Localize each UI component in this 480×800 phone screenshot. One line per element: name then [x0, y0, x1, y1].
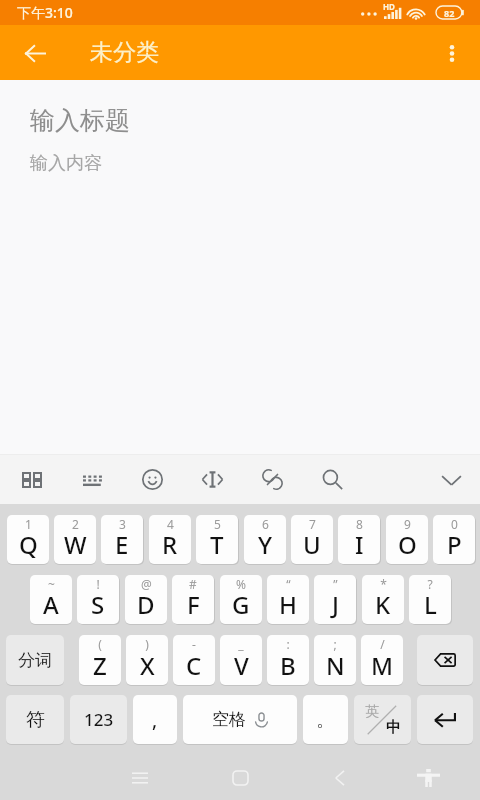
button[interactable]: - — [173, 635, 215, 685]
staticText: ! — [96, 576, 100, 592]
staticText: B — [280, 649, 296, 682]
button[interactable]: / — [361, 635, 403, 685]
staticText: HD — [383, 1, 395, 12]
button[interactable]: 123 — [70, 695, 127, 744]
button[interactable]: 。 — [303, 695, 348, 744]
staticText: Z — [93, 649, 107, 682]
button[interactable]: : — [267, 635, 309, 685]
button[interactable]: 2 — [54, 515, 96, 564]
staticText: ” — [333, 576, 338, 592]
staticText: ) — [145, 636, 149, 652]
staticText: * — [380, 576, 387, 592]
staticText: U — [303, 528, 321, 561]
staticText: 4 — [167, 516, 174, 532]
staticText: ~ — [48, 576, 55, 592]
button[interactable]: Emoji — [122, 455, 182, 504]
staticText: 输入标题 — [30, 105, 130, 136]
staticText: 8 — [356, 516, 363, 532]
staticText: V — [234, 649, 249, 682]
staticText: C — [186, 649, 202, 682]
button[interactable]: 8 — [338, 515, 380, 564]
staticText: ; — [333, 636, 337, 652]
staticText: 输入内容 — [30, 152, 102, 175]
button[interactable]: 1 — [7, 515, 49, 564]
button[interactable]: More options — [430, 31, 474, 75]
button[interactable]: 5 — [196, 515, 238, 564]
staticText: W — [64, 528, 87, 561]
staticText: 空格 — [212, 709, 246, 730]
button[interactable]: 3 — [101, 515, 143, 564]
button[interactable]: Keyboard — [62, 455, 122, 504]
staticText: : — [286, 636, 290, 652]
button[interactable]: # — [172, 575, 214, 624]
button[interactable]: 分词 — [6, 635, 64, 685]
staticText: 82 — [444, 7, 455, 19]
button[interactable]: “ — [267, 575, 309, 624]
staticText: 英 — [365, 703, 379, 721]
staticText: 7 — [309, 516, 316, 532]
button[interactable]: back — [417, 635, 473, 685]
button[interactable]: ) — [126, 635, 168, 685]
staticText: ( — [98, 636, 102, 652]
button[interactable]: 0 — [433, 515, 475, 564]
button[interactable]: ” — [314, 575, 356, 624]
staticText: 2 — [72, 516, 79, 532]
staticText: @ — [141, 576, 152, 592]
button[interactable]: % — [220, 575, 262, 624]
button[interactable]: Accessibility — [398, 755, 458, 800]
staticText: G — [232, 588, 250, 621]
button[interactable]: enter — [417, 695, 473, 744]
button[interactable]: 空格 — [183, 695, 297, 744]
staticText: 。 — [316, 708, 335, 732]
button[interactable]: lang — [354, 695, 411, 744]
staticText: 5 — [214, 516, 221, 532]
staticText: / — [380, 636, 385, 652]
staticText: 3 — [119, 516, 126, 532]
button[interactable]: ! — [77, 575, 119, 624]
button[interactable]: * — [362, 575, 404, 624]
staticText: K — [375, 588, 391, 621]
staticText: Y — [258, 528, 273, 561]
button[interactable]: 4 — [149, 515, 191, 564]
button[interactable]: ( — [79, 635, 121, 685]
button[interactable]: Hide keyboard — [422, 455, 480, 504]
staticText: “ — [286, 576, 291, 592]
staticText: H — [279, 588, 297, 621]
staticText: O — [398, 528, 417, 561]
button[interactable]: ; — [314, 635, 356, 685]
staticText: P — [447, 528, 462, 561]
button[interactable]: @ — [125, 575, 167, 624]
button[interactable]: 符 — [6, 695, 64, 744]
button[interactable]: 6 — [244, 515, 286, 564]
button[interactable]: Cursor control — [182, 455, 242, 504]
staticText: J — [332, 588, 339, 621]
button[interactable]: ? — [409, 575, 451, 624]
staticText: 123 — [84, 708, 114, 731]
staticText: 9 — [404, 516, 411, 532]
button[interactable]: ~ — [30, 575, 72, 624]
staticText: , — [152, 707, 158, 733]
staticText: 0 — [451, 516, 458, 532]
button[interactable]: Search — [302, 455, 362, 504]
button[interactable]: _ — [220, 635, 262, 685]
staticText: 下午3:10 — [17, 3, 73, 22]
staticText: E — [115, 528, 129, 561]
button[interactable]: 7 — [291, 515, 333, 564]
staticText: 中 — [386, 718, 401, 737]
staticText: 符 — [26, 708, 45, 732]
staticText: N — [326, 649, 345, 682]
button[interactable]: Back — [13, 31, 57, 75]
staticText: 分词 — [18, 650, 52, 671]
staticText: M — [371, 649, 394, 682]
button[interactable]: 9 — [386, 515, 428, 564]
button[interactable]: Keyboard layouts — [2, 455, 62, 504]
staticText: # — [189, 576, 197, 592]
staticText: T — [210, 528, 224, 561]
button[interactable]: Clipboard — [242, 455, 302, 504]
button[interactable]: Recent apps — [110, 755, 170, 800]
button[interactable]: Home — [210, 755, 270, 800]
staticText: I — [355, 528, 364, 561]
button[interactable]: , — [133, 695, 177, 744]
staticText: F — [187, 588, 200, 621]
